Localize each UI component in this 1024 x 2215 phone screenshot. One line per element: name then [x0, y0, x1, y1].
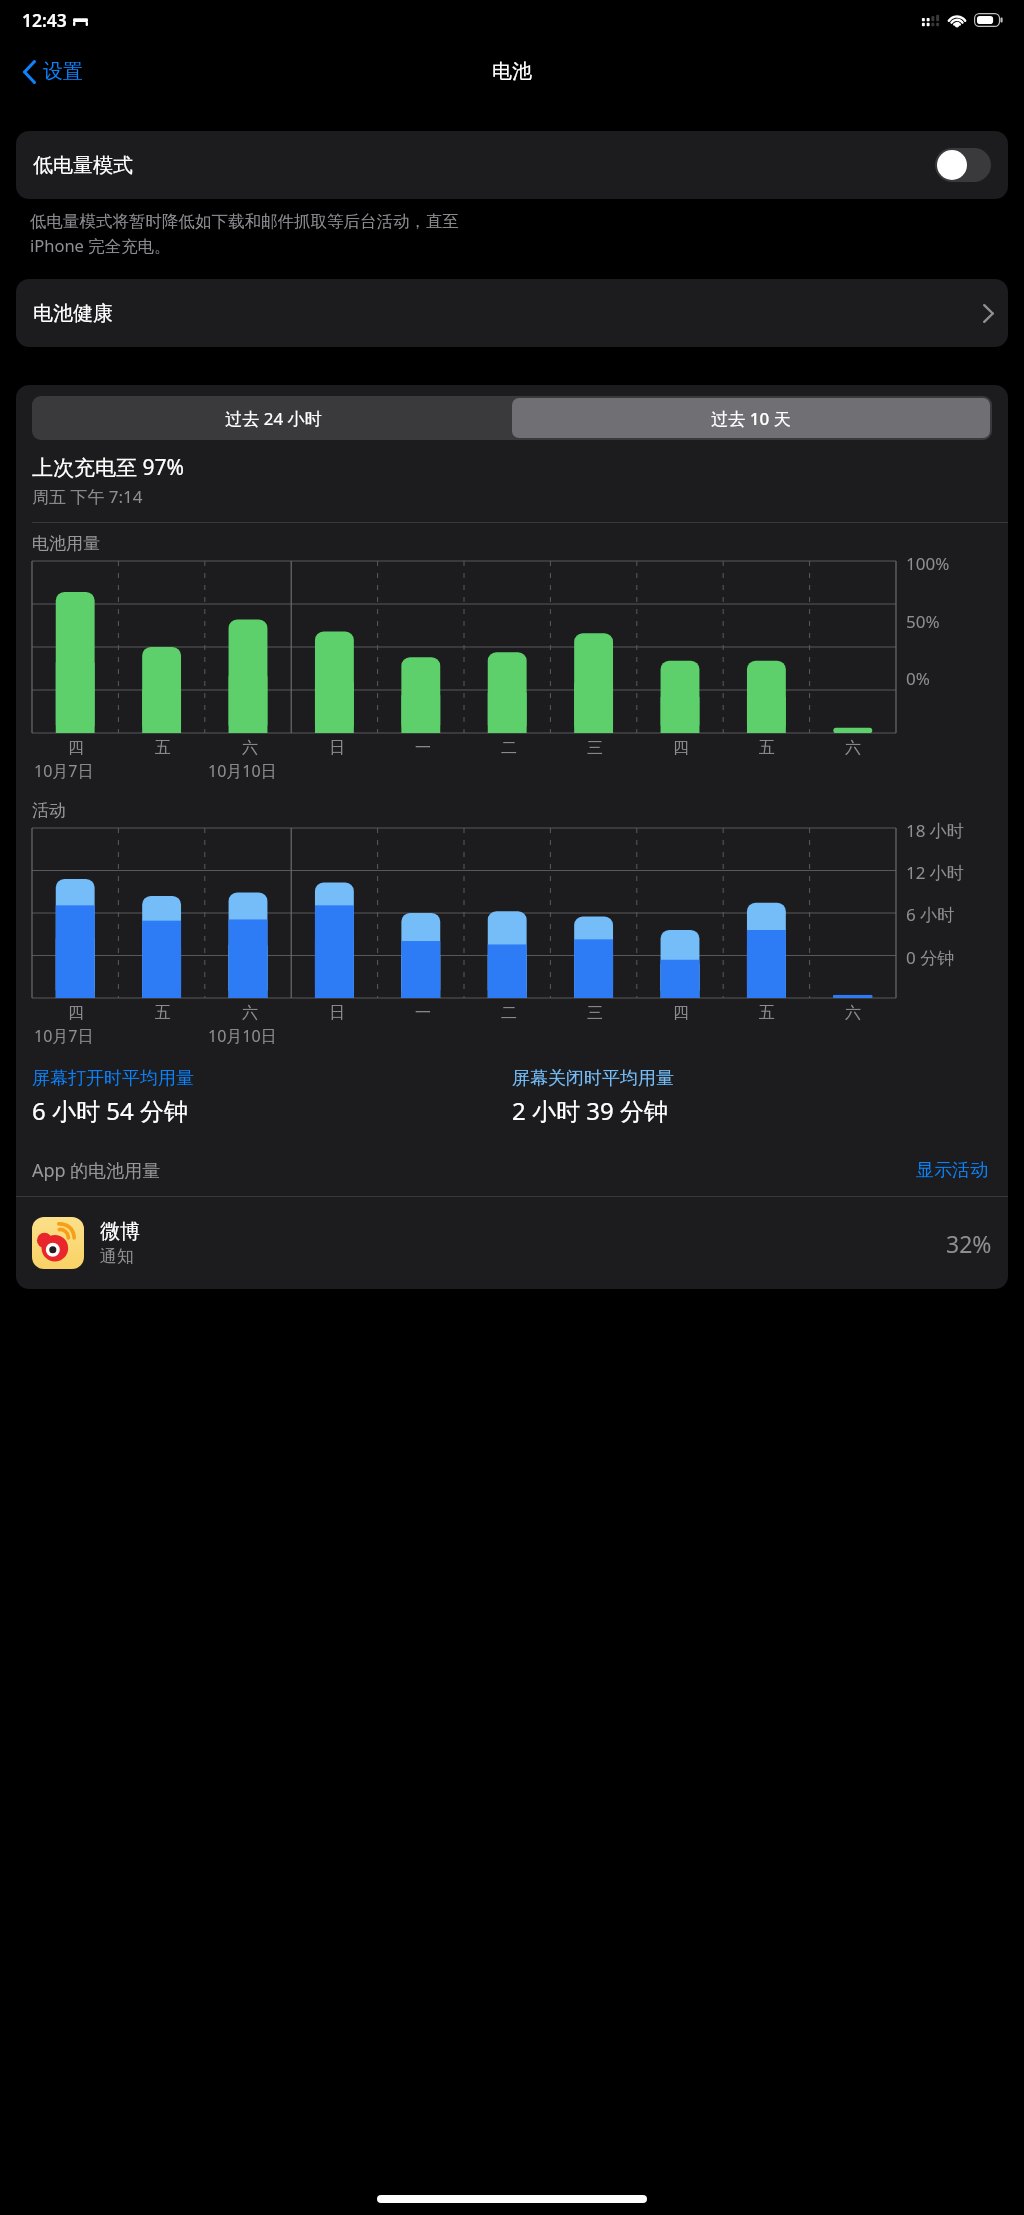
staticText: 电池健康 — [33, 301, 113, 326]
button[interactable]: 显示活动 — [912, 1155, 992, 1186]
staticText: 四 — [673, 1003, 689, 1023]
staticText: 屏幕关闭时平均用量 — [512, 1067, 674, 1090]
staticText: 10月10日 — [208, 1025, 277, 1047]
staticText: 10月7日 — [34, 1025, 94, 1047]
staticText: 微博 — [100, 1219, 140, 1244]
button[interactable]: 过去 24 小时 — [34, 398, 512, 438]
staticText: 显示活动 — [916, 1159, 988, 1182]
staticText: 五 — [155, 1003, 171, 1023]
staticText: 电池 — [492, 59, 532, 84]
staticText: 周五 下午 7:14 — [32, 485, 143, 508]
staticText: 10月10日 — [208, 760, 277, 782]
staticText: 上次充电至 97% — [32, 453, 184, 482]
staticText: 0% — [906, 667, 930, 690]
staticText: 10月7日 — [34, 760, 94, 782]
staticText: 活动 — [32, 800, 66, 821]
button[interactable]: 设置 — [16, 55, 89, 88]
staticText: 二 — [501, 738, 517, 758]
button[interactable]: 电池健康 — [16, 279, 1008, 347]
staticText: 六 — [242, 1003, 258, 1023]
staticText: 六 — [242, 738, 258, 758]
staticText: 50% — [906, 610, 940, 633]
staticText: 六 — [845, 1003, 861, 1023]
staticText: 18 小时 — [906, 819, 964, 842]
staticText: 三 — [587, 738, 603, 758]
staticText: 12 小时 — [906, 861, 964, 884]
staticText: 32% — [946, 1228, 992, 1259]
staticText: 五 — [759, 738, 775, 758]
staticText: 日 — [329, 1003, 345, 1023]
staticText: App 的电池用量 — [32, 1158, 161, 1183]
staticText: 四 — [68, 1003, 84, 1023]
staticText: 二 — [501, 1003, 517, 1023]
staticText: 低电量模式 — [33, 153, 133, 178]
staticText: 六 — [845, 738, 861, 758]
staticText: 6 小时 — [906, 903, 955, 926]
staticText: 屏幕打开时平均用量 — [32, 1067, 194, 1090]
staticText: 低电量模式将暂时降低如下载和邮件抓取等后台活动，直至 iPhone 完全充电。 — [30, 211, 459, 257]
staticText: 0 分钟 — [906, 946, 955, 969]
staticText: 设置 — [43, 59, 83, 84]
staticText: 一 — [415, 738, 431, 758]
staticText: 2 小时 39 分钟 — [512, 1094, 668, 1127]
staticText: 三 — [587, 1003, 603, 1023]
staticText: 100% — [906, 552, 950, 575]
button[interactable]: 微博 — [16, 1197, 1008, 1289]
button[interactable]: 低电量模式 — [16, 131, 1008, 199]
staticText: 一 — [415, 1003, 431, 1023]
staticText: 四 — [673, 738, 689, 758]
staticText: 电池用量 — [32, 533, 100, 554]
staticText: 四 — [68, 738, 84, 758]
staticText: 五 — [759, 1003, 775, 1023]
staticText: 过去 10 天 — [711, 407, 791, 430]
staticText: 12:43 — [22, 8, 67, 32]
staticText: 通知 — [100, 1246, 134, 1267]
staticText: 日 — [329, 738, 345, 758]
button[interactable]: 过去 10 天 — [512, 398, 990, 438]
staticText: 6 小时 54 分钟 — [32, 1094, 188, 1127]
button[interactable]: 低电量模式开关 — [935, 148, 991, 182]
staticText: 五 — [155, 738, 171, 758]
staticText: 过去 24 小时 — [225, 407, 322, 430]
